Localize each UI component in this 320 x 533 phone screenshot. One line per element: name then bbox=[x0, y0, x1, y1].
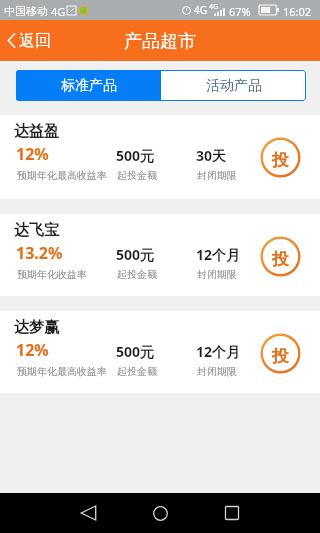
staticText: 12% bbox=[16, 339, 49, 361]
staticText: 封闭期限 bbox=[197, 169, 237, 182]
staticText: 达梦赢 bbox=[14, 318, 59, 337]
staticText: 500元 bbox=[116, 245, 155, 264]
staticText: 投 bbox=[272, 249, 289, 270]
staticText: 16:02 bbox=[283, 4, 312, 19]
staticText: 达飞宝 bbox=[14, 221, 59, 240]
staticText: 500元 bbox=[116, 146, 155, 165]
button[interactable]: 活动产品 bbox=[161, 70, 306, 101]
staticText: 4G bbox=[209, 2, 219, 12]
staticText: 产品超市 bbox=[124, 30, 196, 53]
staticText: 预期年化最高收益率 bbox=[17, 169, 107, 182]
staticText: 12个月 bbox=[196, 245, 241, 264]
staticText: 起投金额 bbox=[117, 365, 157, 378]
staticText: 12个月 bbox=[196, 342, 241, 361]
staticText: 67% bbox=[229, 4, 251, 19]
button[interactable]: 返回 bbox=[0, 20, 61, 61]
button[interactable]: 达梦赢 bbox=[0, 311, 320, 393]
button[interactable]: 投资 bbox=[260, 236, 301, 277]
button[interactable]: Home bbox=[136, 493, 184, 533]
button[interactable]: 标准产品 bbox=[16, 70, 161, 101]
button[interactable]: 达益盈 bbox=[0, 115, 320, 199]
button[interactable]: 投资 bbox=[260, 137, 301, 178]
staticText: 4G bbox=[194, 3, 207, 17]
staticText: 中国移动 bbox=[4, 4, 48, 18]
staticText: 预期年化收益率 bbox=[17, 268, 87, 281]
staticText: 预期年化最高收益率 bbox=[17, 365, 107, 378]
staticText: 投 bbox=[272, 150, 289, 171]
staticText: 活动产品 bbox=[206, 77, 262, 95]
staticText: 12% bbox=[16, 143, 49, 165]
staticText: 封闭期限 bbox=[197, 365, 237, 378]
staticText: 30天 bbox=[196, 146, 227, 165]
staticText: 达益盈 bbox=[14, 122, 59, 141]
staticText: 4G bbox=[51, 4, 66, 19]
staticText: 500元 bbox=[116, 342, 155, 361]
staticText: 返回 bbox=[19, 31, 51, 51]
staticText: 13.2% bbox=[16, 242, 63, 264]
staticText: 标准产品 bbox=[61, 77, 117, 95]
button[interactable]: 达飞宝 bbox=[0, 214, 320, 296]
staticText: 起投金额 bbox=[117, 169, 157, 182]
button[interactable]: Recents bbox=[208, 493, 256, 533]
staticText: 起投金额 bbox=[117, 268, 157, 281]
button[interactable]: Back bbox=[64, 493, 112, 533]
button[interactable]: 投资 bbox=[260, 333, 301, 374]
staticText: 封闭期限 bbox=[197, 268, 237, 281]
staticText: 投 bbox=[272, 346, 289, 367]
